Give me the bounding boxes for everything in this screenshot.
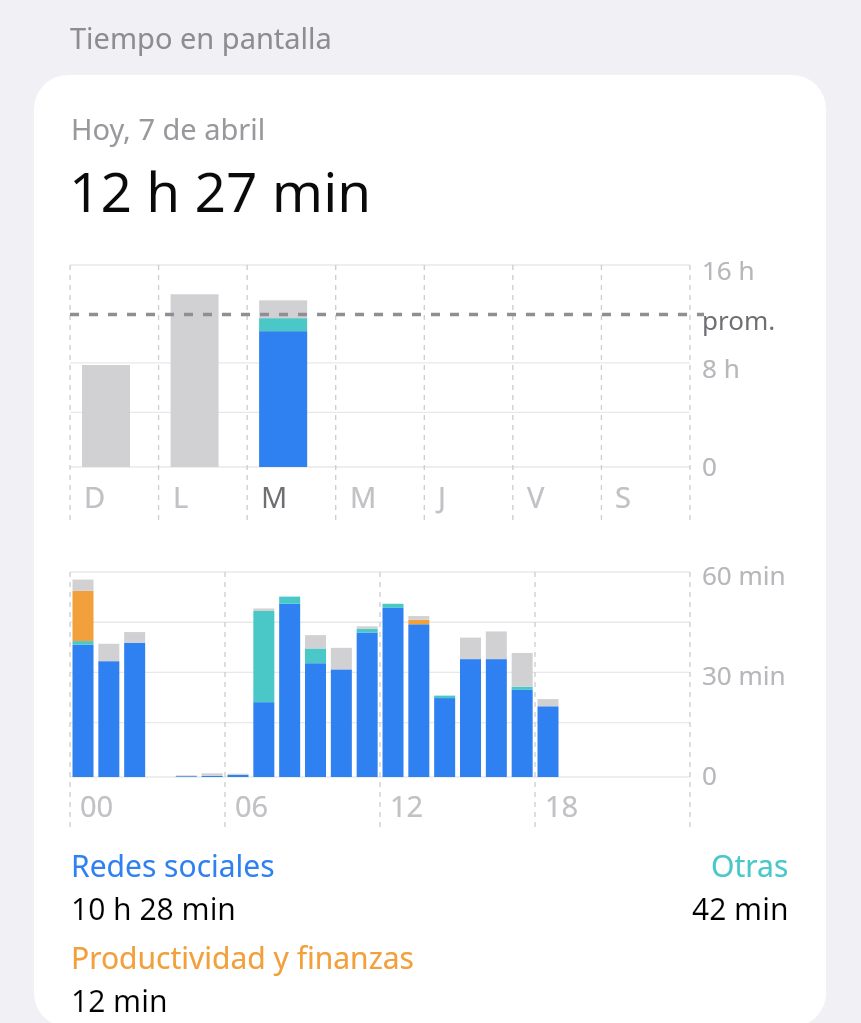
- staticText: M: [350, 477, 377, 516]
- staticText: 18: [545, 786, 579, 825]
- button[interactable]: Resumen semanal: [34, 265, 826, 525]
- button[interactable]: Hoy, 7 de abril: [34, 75, 826, 1023]
- staticText: 16 h: [702, 252, 755, 287]
- staticText: V: [527, 477, 545, 516]
- staticText: 0: [702, 757, 717, 792]
- staticText: Tiempo en pantalla: [70, 18, 332, 57]
- staticText: 42 min: [692, 888, 789, 929]
- staticText: 10 h 28 min: [71, 888, 692, 929]
- staticText: D: [84, 477, 106, 516]
- staticText: 12 h 27 min: [69, 153, 372, 228]
- staticText: J: [438, 477, 446, 516]
- staticText: 06: [235, 786, 269, 825]
- staticText: prom.: [702, 302, 776, 337]
- staticText: M: [261, 477, 288, 516]
- staticText: 12 min: [71, 980, 168, 1021]
- staticText: 60 min: [702, 557, 786, 592]
- staticText: 00: [80, 786, 114, 825]
- staticText: Otras: [711, 845, 789, 886]
- button[interactable]: Uso por hora: [34, 572, 826, 832]
- staticText: 0: [702, 448, 717, 483]
- staticText: 30 min: [702, 657, 786, 692]
- staticText: L: [173, 477, 189, 516]
- staticText: Productividad y finanzas: [71, 937, 414, 978]
- staticText: 12: [390, 786, 424, 825]
- staticText: 8 h: [702, 350, 740, 385]
- staticText: S: [615, 477, 631, 516]
- staticText: Hoy, 7 de abril: [71, 109, 266, 148]
- staticText: Redes sociales: [71, 845, 711, 886]
